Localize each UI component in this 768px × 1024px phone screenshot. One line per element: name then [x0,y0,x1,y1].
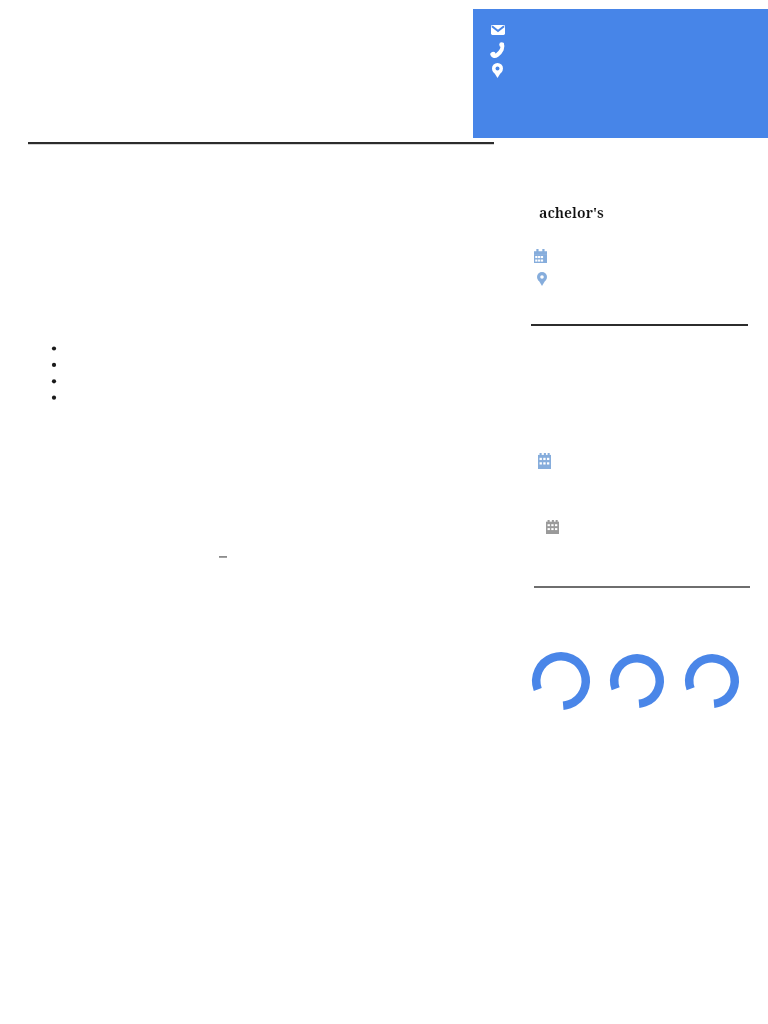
button[interactable]: Email [486,19,510,39]
button[interactable]: Dates [530,246,550,266]
button[interactable]: Location [532,270,552,288]
staticText: achelor's [539,203,604,222]
button[interactable]: Skill level [606,650,668,712]
button[interactable] [473,9,768,138]
button[interactable]: Phone [486,40,510,60]
button[interactable]: Skill level [681,650,743,712]
button[interactable]: Skill level [528,648,594,714]
button[interactable]: Company [532,449,554,471]
button[interactable]: Company [540,516,562,538]
button[interactable]: achelor's [539,203,604,222]
button[interactable]: Location [486,61,510,81]
